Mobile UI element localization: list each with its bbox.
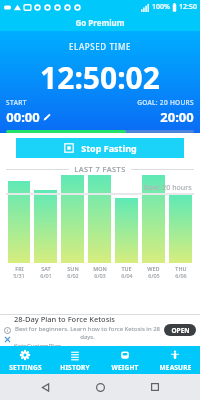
staticText: 100% [152,2,170,12]
button[interactable]: WEIGHT [100,346,150,374]
staticText: GOAL: 20 HOURS [137,98,194,107]
staticText: MON [93,265,107,272]
staticText: ELAPSED TIME [69,41,131,52]
other: Edit start time [43,113,51,121]
staticText: 12:50:02 [40,57,160,98]
staticText: 20:00 [160,108,194,126]
button[interactable]: OPEN [164,324,196,336]
staticText: 28-Day Plan to Force Ketosis [14,314,115,324]
staticText: MEASURE [159,363,192,372]
staticText: 6/01 [40,272,52,279]
other: Close ad [4,336,11,343]
staticText: WED [147,265,160,272]
button[interactable]: 00:00 [6,108,51,126]
staticText: START [6,98,27,107]
staticText: KetoCustomPlan [14,342,61,346]
button[interactable]: SETTINGS [0,346,50,374]
staticText: 6/05 [148,272,160,279]
button[interactable]: Back [35,377,55,397]
staticText: TUE [121,265,132,272]
button[interactable]: Ad info [0,314,200,346]
staticText: LAST 7 FASTS [74,164,126,174]
other: Ad info [4,327,11,334]
staticText: FRI [15,265,24,272]
button[interactable]: Home [90,377,110,397]
staticText: WEIGHT [111,363,139,372]
staticText: Best for beginners. Learn how to force K… [14,325,161,341]
staticText: 12:50 [179,2,197,12]
staticText: 00:00 [6,108,40,126]
staticText: OPEN [171,326,190,335]
staticText: 6/02 [67,272,79,279]
staticText: 5/31 [13,272,25,279]
staticText: HISTORY [60,363,90,372]
staticText: SUN [67,265,79,272]
staticText: SETTINGS [9,363,42,372]
staticText: Goal: 20 hours [143,183,192,193]
button[interactable]: HISTORY [50,346,100,374]
staticText: THU [175,265,187,272]
button[interactable]: Go Premium [0,14,200,31]
button[interactable]: MEASURE [150,346,200,374]
staticText: SAT [41,265,51,272]
staticText: Stop Fasting [81,142,137,154]
button[interactable]: Recents [145,377,165,397]
staticText: 6/04 [121,272,133,279]
staticText: 6/03 [94,272,106,279]
staticText: Go Premium [75,17,125,28]
button[interactable]: Stop Fasting [16,138,184,158]
staticText: 6/06 [175,272,187,279]
